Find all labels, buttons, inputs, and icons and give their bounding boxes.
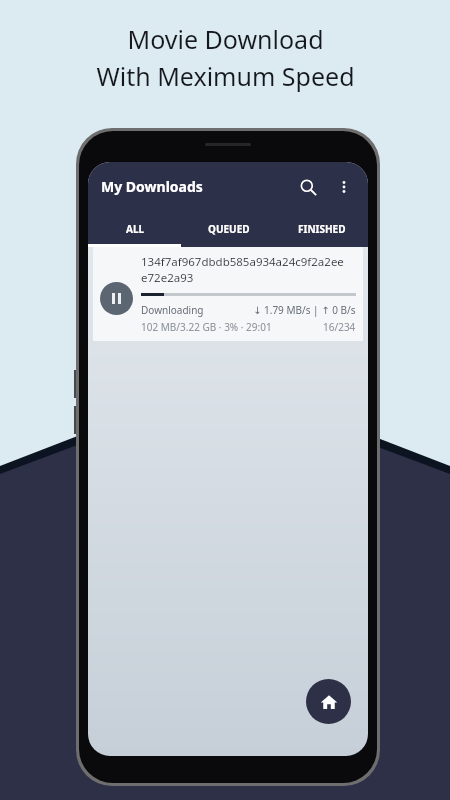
button[interactable]: FINISHED xyxy=(275,211,368,247)
button[interactable]: Home xyxy=(306,679,351,724)
staticText: With Meximum Speed xyxy=(96,59,355,93)
button[interactable]: Search xyxy=(291,170,325,204)
staticText: FINISHED xyxy=(298,222,346,236)
staticText: ↓ 1.79 MB/s | ↑ 0 B/s xyxy=(253,303,356,317)
staticText: QUEUED xyxy=(208,222,250,236)
staticText: 134f7af967dbdb585a934a24c9f2a2ee e72e2a9… xyxy=(141,254,344,285)
staticText: Movie Download xyxy=(127,22,324,56)
button[interactable]: ALL xyxy=(88,211,182,247)
button[interactable]: QUEUED xyxy=(182,211,275,247)
button[interactable]: More options xyxy=(329,172,359,202)
staticText: 102 MB/3.22 GB · 3% · 29:01 xyxy=(141,320,272,334)
staticText: ALL xyxy=(126,222,145,236)
staticText: 16/234 xyxy=(323,320,356,334)
staticText: Downloading xyxy=(141,303,204,317)
staticText: My Downloads xyxy=(101,177,203,196)
button[interactable]: Pause xyxy=(93,247,363,341)
button[interactable]: Pause xyxy=(100,282,133,315)
